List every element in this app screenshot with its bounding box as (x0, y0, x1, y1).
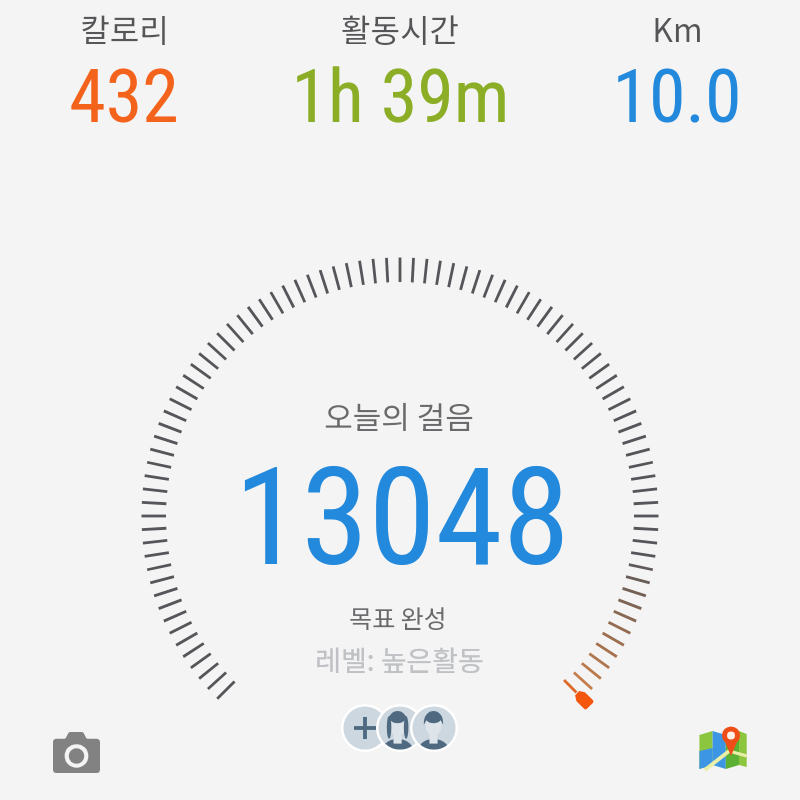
button[interactable]: Friend 2 (410, 704, 458, 752)
staticText: 432 (69, 53, 179, 140)
button[interactable]: Camera (29, 714, 124, 792)
button[interactable]: Add friend (341, 704, 389, 752)
staticText: Km (652, 5, 703, 51)
staticText: 1h 39m (291, 53, 510, 140)
staticText: 활동시간 (341, 5, 459, 51)
button[interactable]: 활동시간 (275, 0, 525, 130)
staticText: 오늘의 걸음 (324, 393, 474, 438)
staticText: 13048 (234, 438, 570, 597)
button[interactable]: Today's steps 13048 (138, 254, 663, 714)
button[interactable]: Friend 1 (376, 704, 424, 752)
staticText: 레벨: 높은활동 (315, 639, 484, 680)
button[interactable]: 칼로리 (0, 0, 249, 130)
staticText: 칼로리 (80, 5, 169, 51)
staticText: 목표 완성 (349, 599, 447, 635)
button[interactable]: Map (675, 710, 770, 788)
staticText: 10.0 (612, 53, 742, 140)
button[interactable]: Km (552, 0, 800, 130)
